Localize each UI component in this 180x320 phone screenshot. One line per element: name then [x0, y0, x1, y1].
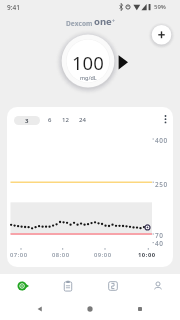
- staticText: 08:00: [52, 251, 70, 259]
- button[interactable]: Profile: [135, 274, 180, 298]
- button[interactable]: Recents: [136, 305, 144, 313]
- button[interactable]: 24: [79, 116, 86, 124]
- button[interactable]: 100: [61, 36, 114, 89]
- staticText: Dexcom: [66, 19, 93, 28]
- staticText: 100: [72, 50, 104, 75]
- staticText: 09:00: [94, 251, 112, 259]
- button[interactable]: 6: [48, 116, 52, 124]
- button[interactable]: Logbook: [45, 274, 90, 298]
- staticText: 59%: [154, 3, 166, 11]
- staticText: 07:00: [10, 251, 28, 259]
- staticText: 10:00: [138, 251, 156, 259]
- button[interactable]: Add event: [152, 25, 172, 45]
- staticText: 250: [155, 180, 168, 189]
- staticText: 6: [48, 116, 52, 124]
- staticText: 9:41: [7, 3, 20, 12]
- button[interactable]: 12: [62, 116, 69, 124]
- staticText: 40: [155, 239, 164, 248]
- staticText: one: [94, 15, 112, 28]
- staticText: 70: [155, 231, 164, 240]
- button[interactable]: 3: [14, 116, 40, 125]
- button[interactable]: Home: [86, 305, 94, 313]
- staticText: mg/dL: [80, 74, 97, 81]
- button[interactable]: Back: [36, 305, 44, 313]
- staticText: 12: [62, 116, 69, 124]
- button[interactable]: Connections: [90, 274, 135, 298]
- button[interactable]: Glucose: [0, 274, 45, 298]
- staticText: 24: [79, 116, 86, 124]
- staticText: 400: [155, 136, 168, 145]
- button[interactable]: More options: [164, 115, 167, 125]
- staticText: +: [112, 18, 115, 25]
- staticText: 3: [25, 117, 29, 125]
